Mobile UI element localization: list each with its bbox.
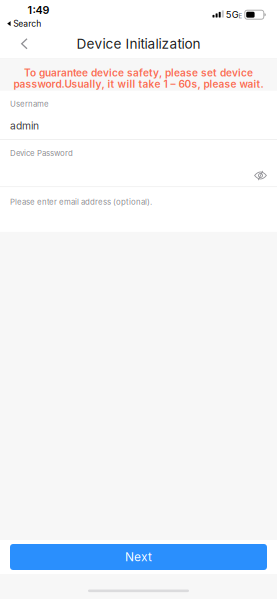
button[interactable]: Search <box>7 18 41 29</box>
staticText: Next <box>125 550 152 564</box>
button[interactable]: Back <box>0 31 40 56</box>
staticText: Search <box>13 18 41 29</box>
staticText: admin <box>10 120 39 132</box>
staticText: To guarantee device safety, please set d… <box>24 67 253 79</box>
button[interactable]: Next <box>10 544 267 570</box>
staticText: password.Usually, it will take 1 – 60s, … <box>13 78 263 90</box>
staticText: E <box>239 12 243 20</box>
staticText: Device Initialization <box>76 35 200 52</box>
staticText: Username <box>10 99 49 109</box>
staticText: Please enter email address (optional). <box>10 197 152 207</box>
staticText: 1:49 <box>27 4 49 17</box>
button[interactable]: Show password <box>249 166 273 185</box>
staticText: 5G <box>226 9 239 20</box>
staticText: Device Password <box>10 148 73 158</box>
